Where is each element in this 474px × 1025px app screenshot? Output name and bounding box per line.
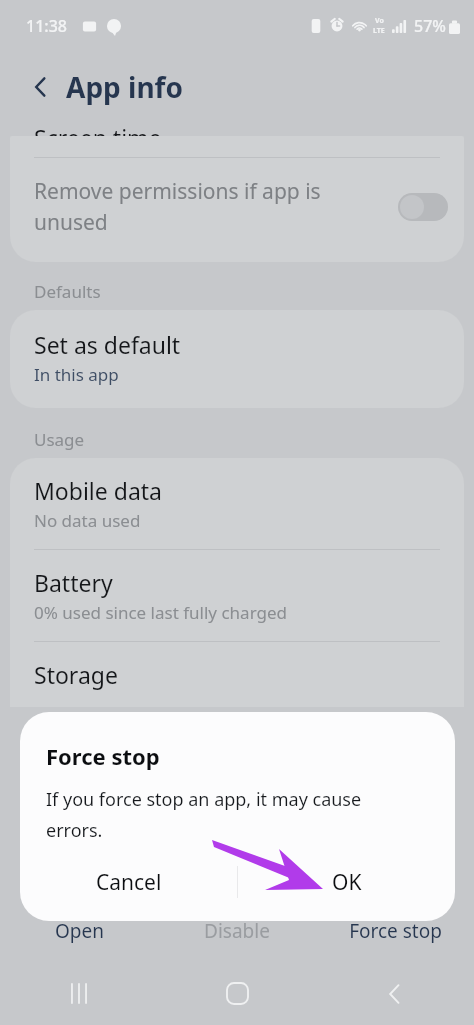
- staticText: Storage: [34, 659, 118, 690]
- staticText: Cancel: [96, 868, 162, 897]
- staticText: Remove permissions if app is unused: [34, 177, 390, 236]
- staticText: Force stop: [46, 741, 160, 771]
- button[interactable]: Set as default: [10, 310, 464, 408]
- button[interactable]: Cancel: [20, 851, 237, 913]
- staticText: Force stop: [349, 918, 442, 944]
- button[interactable]: Back: [20, 66, 62, 108]
- staticText: No data used: [34, 509, 141, 532]
- staticText: Usage: [34, 428, 85, 451]
- staticText: OK: [332, 868, 362, 897]
- button[interactable]: Disable: [158, 918, 316, 962]
- staticText: Screen time: [34, 122, 162, 136]
- staticText: LTE: [373, 26, 385, 36]
- button[interactable]: Storage: [10, 642, 464, 707]
- staticText: If you force stop an app, it may cause e…: [46, 787, 362, 842]
- button[interactable]: Open: [0, 918, 158, 962]
- staticText: Mobile data: [34, 475, 162, 506]
- button[interactable]: Battery: [10, 550, 464, 641]
- button[interactable]: Remove permissions if app is unused: [10, 158, 464, 262]
- button[interactable]: Recent apps: [0, 962, 158, 1025]
- staticText: 0% used since last fully charged: [34, 601, 287, 624]
- staticText: Defaults: [34, 280, 101, 303]
- staticText: Set as default: [34, 329, 181, 360]
- staticText: Open: [55, 918, 104, 944]
- button[interactable]: Mobile data: [10, 458, 464, 549]
- staticText: 11:38: [26, 15, 67, 37]
- staticText: In this app: [34, 363, 119, 386]
- staticText: App info: [66, 68, 183, 106]
- staticText: Disable: [204, 918, 270, 944]
- button[interactable]: Remove permissions if app is unused togg…: [398, 193, 448, 221]
- staticText: 57%: [414, 15, 446, 37]
- button[interactable]: Home: [158, 962, 316, 1025]
- staticText: Vo: [375, 16, 384, 26]
- button[interactable]: OK: [238, 851, 455, 913]
- button[interactable]: Force stop: [316, 918, 474, 962]
- staticText: Battery: [34, 567, 113, 598]
